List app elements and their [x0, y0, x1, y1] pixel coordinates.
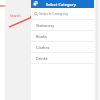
button[interactable]: Search Category	[31, 8, 94, 19]
button[interactable]: Books	[31, 31, 94, 41]
staticText: Search	[10, 13, 21, 17]
staticText: Drinks	[36, 56, 48, 61]
button[interactable]: Clothes	[31, 42, 94, 52]
staticText: Select Category	[46, 2, 76, 7]
staticText: Books	[36, 34, 47, 39]
staticText: Search Category	[39, 11, 69, 16]
button[interactable]: Stationery	[31, 20, 94, 30]
button[interactable]: Drinks	[31, 53, 94, 63]
staticText: Clothes	[36, 45, 50, 50]
button[interactable]: Collections	[33, 1, 38, 6]
staticText: Stationery	[36, 23, 55, 28]
